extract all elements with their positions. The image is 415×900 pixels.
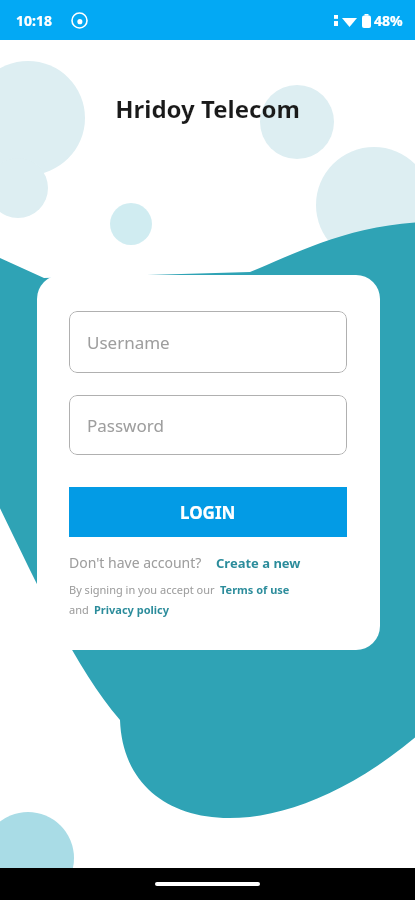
button[interactable]: Terms of use bbox=[220, 582, 290, 597]
button[interactable]: Password bbox=[69, 395, 347, 455]
staticText: Username bbox=[87, 331, 170, 354]
button[interactable]: Privacy policy bbox=[94, 602, 170, 617]
staticText: 10:18 bbox=[16, 11, 52, 30]
staticText: Terms of use bbox=[220, 582, 290, 597]
staticText: Hridoy Telecom bbox=[115, 92, 300, 125]
other: Home gesture bbox=[155, 882, 260, 886]
staticText: Create a new bbox=[216, 554, 301, 572]
button[interactable]: Create a new bbox=[216, 554, 301, 572]
button[interactable]: LOGIN bbox=[69, 487, 347, 537]
staticText: 48% bbox=[374, 11, 403, 30]
staticText: Privacy policy bbox=[94, 602, 170, 617]
staticText: Don't have account? bbox=[69, 553, 202, 572]
staticText: Password bbox=[87, 414, 164, 437]
staticText: By signing in you accept our bbox=[69, 582, 215, 597]
button[interactable]: Username bbox=[69, 311, 347, 373]
staticText: and bbox=[69, 602, 89, 617]
staticText: LOGIN bbox=[180, 501, 236, 524]
